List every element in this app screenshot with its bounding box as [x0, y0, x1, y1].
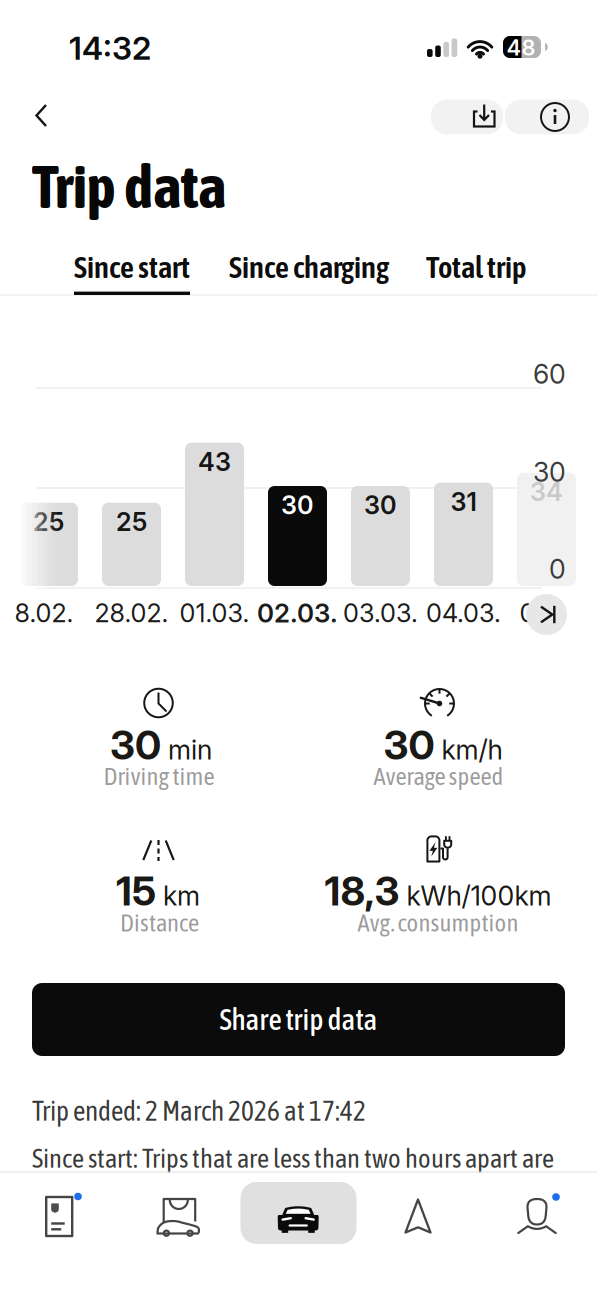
button[interactable]: Vehicle details — [0, 1169, 119, 1261]
button[interactable]: Since start — [57, 245, 207, 289]
staticText: 02.03. — [257, 597, 338, 629]
staticText: 0 — [549, 553, 566, 585]
staticText: 25 — [116, 506, 147, 537]
button[interactable]: Navigation — [358, 1169, 477, 1261]
staticText: Avg. consumption — [357, 908, 518, 937]
staticText: 30 min — [110, 721, 212, 769]
staticText: 28.02. — [94, 598, 168, 628]
staticText: 43 — [198, 446, 231, 477]
staticText: 05. — [519, 598, 556, 628]
staticText: 30 — [281, 490, 314, 520]
staticText: 31 — [450, 486, 476, 517]
staticText: 34 — [530, 476, 563, 507]
button[interactable]: Info — [505, 99, 589, 134]
button[interactable]: Share trip data — [32, 983, 565, 1056]
button[interactable]: Export trip data — [431, 99, 503, 134]
button[interactable]: Skip to latest — [526, 594, 567, 635]
staticText: Since charging — [229, 249, 389, 284]
staticText: Distance — [120, 908, 199, 937]
button[interactable]: My vehicle — [239, 1169, 358, 1261]
staticText: 01.03. — [179, 598, 249, 628]
staticText: Since start: Trips that are less than tw… — [32, 1143, 554, 1173]
staticText: Share trip data — [219, 1003, 377, 1036]
staticText: Total trip — [426, 249, 527, 284]
staticText: 25 — [33, 506, 64, 537]
button[interactable]: Since charging — [219, 245, 399, 289]
staticText: Driving time — [103, 762, 214, 790]
staticText: 03.03. — [343, 598, 418, 628]
staticText: 48 — [506, 34, 535, 61]
staticText: 14:32 — [69, 29, 151, 67]
staticText: 04.03. — [426, 598, 501, 628]
staticText: Trip ended: 2 March 2026 at 17:42 — [32, 1095, 366, 1127]
staticText: 30 km/h — [383, 721, 502, 769]
button[interactable]: Profile — [478, 1169, 597, 1261]
button[interactable]: Total trip — [411, 245, 541, 289]
staticText: 18,3 kWh/100km — [324, 867, 551, 915]
staticText: 60 — [533, 358, 566, 390]
button[interactable]: Back — [20, 94, 64, 138]
staticText: Average speed — [373, 762, 503, 790]
staticText: 30 — [533, 456, 566, 488]
button[interactable]: Shop — [120, 1169, 239, 1261]
staticText: 8.02. — [14, 598, 73, 628]
staticText: Trip data — [32, 151, 226, 221]
staticText: 15 km — [116, 867, 200, 915]
staticText: Since start — [74, 249, 190, 284]
staticText: 30 — [364, 490, 397, 520]
